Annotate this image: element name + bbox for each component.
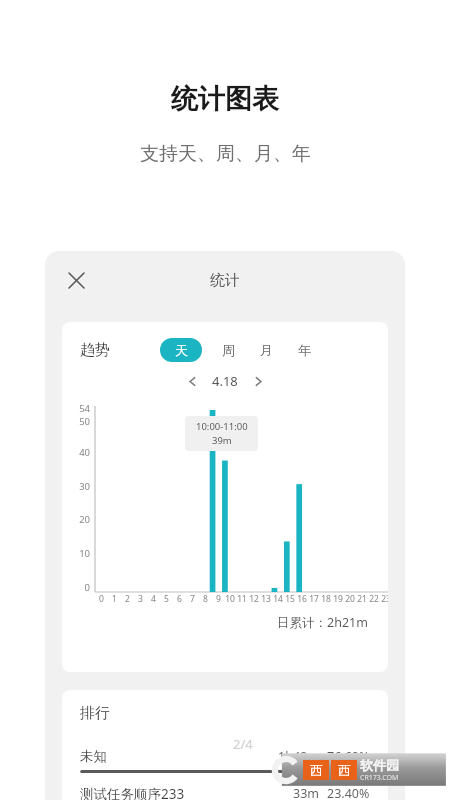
staticText: 22 [369,593,379,605]
staticText: 33m [293,785,319,800]
staticText: 趋势 [80,341,110,360]
staticText: 1h48m [278,748,319,765]
staticText: 未知 [80,748,107,765]
staticText: 23 [381,593,388,605]
staticText: 2/4 [233,735,253,753]
staticText: 14 [273,593,283,605]
staticText: 0 [99,593,104,605]
staticText: 5 [164,593,169,605]
button[interactable]: 未知 [62,739,388,773]
staticText: 15 [285,593,295,605]
staticText: 40 [70,446,90,459]
button[interactable]: Previous day [181,370,203,392]
button[interactable]: 周 [216,338,240,362]
staticText: 统计图表 [171,82,279,116]
staticText: 11 [237,593,247,605]
staticText: 19 [333,593,343,605]
staticText: 13 [261,593,271,605]
staticText: 软件园 [360,757,399,773]
button[interactable]: Next day [247,370,269,392]
staticText: 50 [70,415,90,428]
staticText: 2 [125,593,130,605]
staticText: 周 [222,342,235,358]
staticText: 30 [70,480,90,493]
staticText: 76.60% [327,748,370,765]
staticText: 3 [138,593,143,605]
staticText: 23.40% [327,785,370,800]
staticText: 年 [298,342,311,358]
staticText: 天 [175,342,188,358]
staticText: 月 [260,342,273,358]
staticText: 9 [216,593,221,605]
staticText: 20 [345,593,355,605]
staticText: 西 [310,762,323,778]
button[interactable]: Close [57,261,95,299]
staticText: 21 [357,593,367,605]
staticText: 10 [70,547,90,560]
staticText: 0 [70,581,90,594]
staticText: 4.18 [212,372,238,390]
staticText: 测试任务顺序233 [80,785,185,800]
staticText: 17 [309,593,319,605]
staticText: 12 [249,593,259,605]
staticText: 16 [297,593,307,605]
staticText: 10 [225,593,235,605]
button[interactable]: 天 [160,338,202,362]
staticText: 8 [203,593,208,605]
staticText: 排行 [80,704,110,723]
button[interactable]: 年 [292,338,316,362]
staticText: 6 [177,593,182,605]
staticText: 10:00-11:00 [196,420,248,433]
staticText: 日累计：2h21m [277,614,368,631]
staticText: 统计 [210,271,240,290]
staticText: 39m [212,434,232,447]
staticText: 20 [70,513,90,526]
button[interactable]: 测试任务顺序233 [62,785,388,800]
staticText: 1 [112,593,117,605]
staticText: 18 [321,593,331,605]
staticText: CR173.COM [360,773,399,783]
staticText: 支持天、周、月、年 [140,142,311,166]
button[interactable]: 月 [254,338,278,362]
staticText: 4 [151,593,156,605]
staticText: 西 [338,762,351,778]
staticText: 7 [190,593,195,605]
staticText: 54 [70,402,90,415]
